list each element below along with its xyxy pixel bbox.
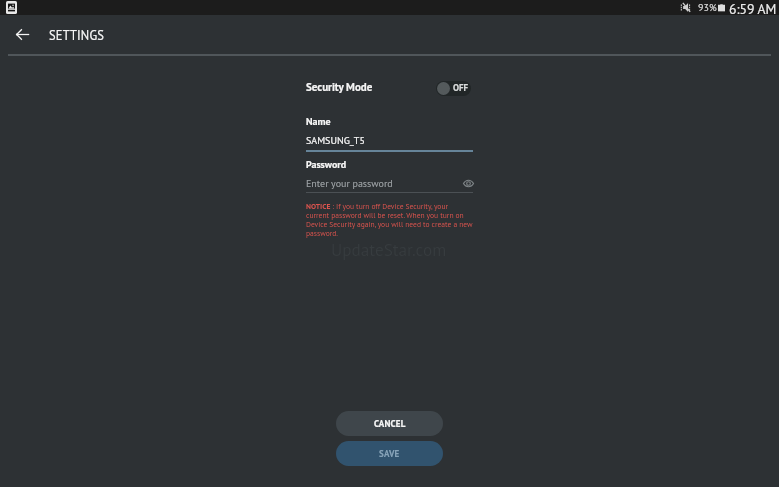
button[interactable]: Security Mode off xyxy=(436,81,471,96)
other: Sound muted, vibrate xyxy=(680,2,693,13)
button[interactable]: SAVE xyxy=(336,441,443,466)
other: Screenshot captured xyxy=(6,1,17,14)
staticText: CANCEL xyxy=(374,418,406,430)
staticText: SAMSUNG_T5 xyxy=(306,134,365,147)
staticText: SAVE xyxy=(379,448,400,460)
staticText: Enter your password xyxy=(306,177,393,190)
button[interactable]: Security Mode xyxy=(306,79,473,97)
staticText: Password xyxy=(306,158,347,171)
staticText: Security Mode xyxy=(306,80,373,94)
staticText: 93% xyxy=(698,1,717,14)
staticText: NOTICE : If you turn off Device Security… xyxy=(306,201,473,238)
staticText: 6:59 AM xyxy=(729,0,777,15)
staticText: OFF xyxy=(453,82,469,94)
button[interactable]: Navigate up xyxy=(10,22,34,46)
staticText: SETTINGS xyxy=(49,27,105,43)
button[interactable]: CANCEL xyxy=(336,411,443,436)
button[interactable]: Show password xyxy=(461,176,475,190)
staticText: Name xyxy=(306,115,331,128)
